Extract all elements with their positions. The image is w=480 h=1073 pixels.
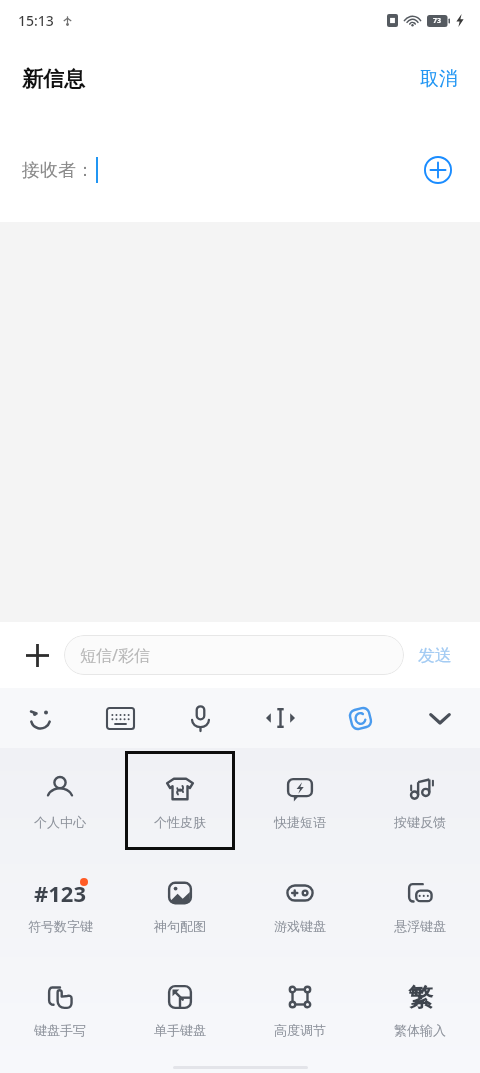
staticText: 个人中心: [34, 814, 86, 830]
staticText: 繁: [408, 982, 433, 1013]
staticText: 符号数字键: [28, 918, 93, 934]
button[interactable]: 快捷短语: [245, 751, 355, 850]
staticText: 高度调节: [274, 1022, 326, 1038]
staticText: 游戏键盘: [274, 918, 326, 934]
button[interactable]: 高度调节: [245, 960, 355, 1058]
button[interactable]: 神句配图: [125, 856, 235, 954]
staticText: 快捷短语: [274, 814, 326, 830]
staticText: 短信/彩信: [80, 644, 150, 666]
staticText: 发送: [418, 645, 452, 666]
staticText: 取消: [420, 67, 458, 91]
staticText: #123: [34, 878, 86, 908]
staticText: 繁体输入: [394, 1022, 446, 1038]
button[interactable]: Keyboard: [80, 688, 160, 748]
staticText: 悬浮键盘: [394, 918, 446, 934]
button[interactable]: 取消: [398, 55, 480, 103]
staticText: 神句配图: [154, 918, 206, 934]
button[interactable]: Collapse keyboard: [400, 688, 480, 748]
staticText: 按键反馈: [394, 814, 446, 830]
button[interactable]: 个性皮肤: [125, 751, 235, 850]
button[interactable]: Emoji: [0, 688, 80, 748]
button[interactable]: Move cursor: [240, 688, 320, 748]
button[interactable]: 单手键盘: [125, 960, 235, 1058]
staticText: 个性皮肤: [154, 814, 206, 830]
button[interactable]: Sogou input: [320, 688, 400, 748]
button[interactable]: 繁: [365, 960, 475, 1058]
button[interactable]: 发送: [404, 633, 466, 678]
button[interactable]: Add recipient: [416, 148, 460, 192]
staticText: 键盘手写: [34, 1022, 86, 1038]
staticText: 15:13: [18, 11, 54, 30]
staticText: 73: [433, 16, 442, 26]
button[interactable]: 按键反馈: [365, 751, 475, 850]
button[interactable]: 悬浮键盘: [365, 856, 475, 954]
button[interactable]: 短信/彩信: [64, 635, 404, 675]
button[interactable]: Voice input: [160, 688, 240, 748]
button[interactable]: 游戏键盘: [245, 856, 355, 954]
button[interactable]: 个人中心: [5, 751, 115, 850]
button[interactable]: #123: [5, 856, 115, 954]
staticText: 单手键盘: [154, 1022, 206, 1038]
button[interactable]: Attach: [14, 632, 60, 678]
staticText: 接收者：: [22, 159, 94, 182]
staticText: 新信息: [22, 66, 85, 92]
button[interactable]: 键盘手写: [5, 960, 115, 1058]
